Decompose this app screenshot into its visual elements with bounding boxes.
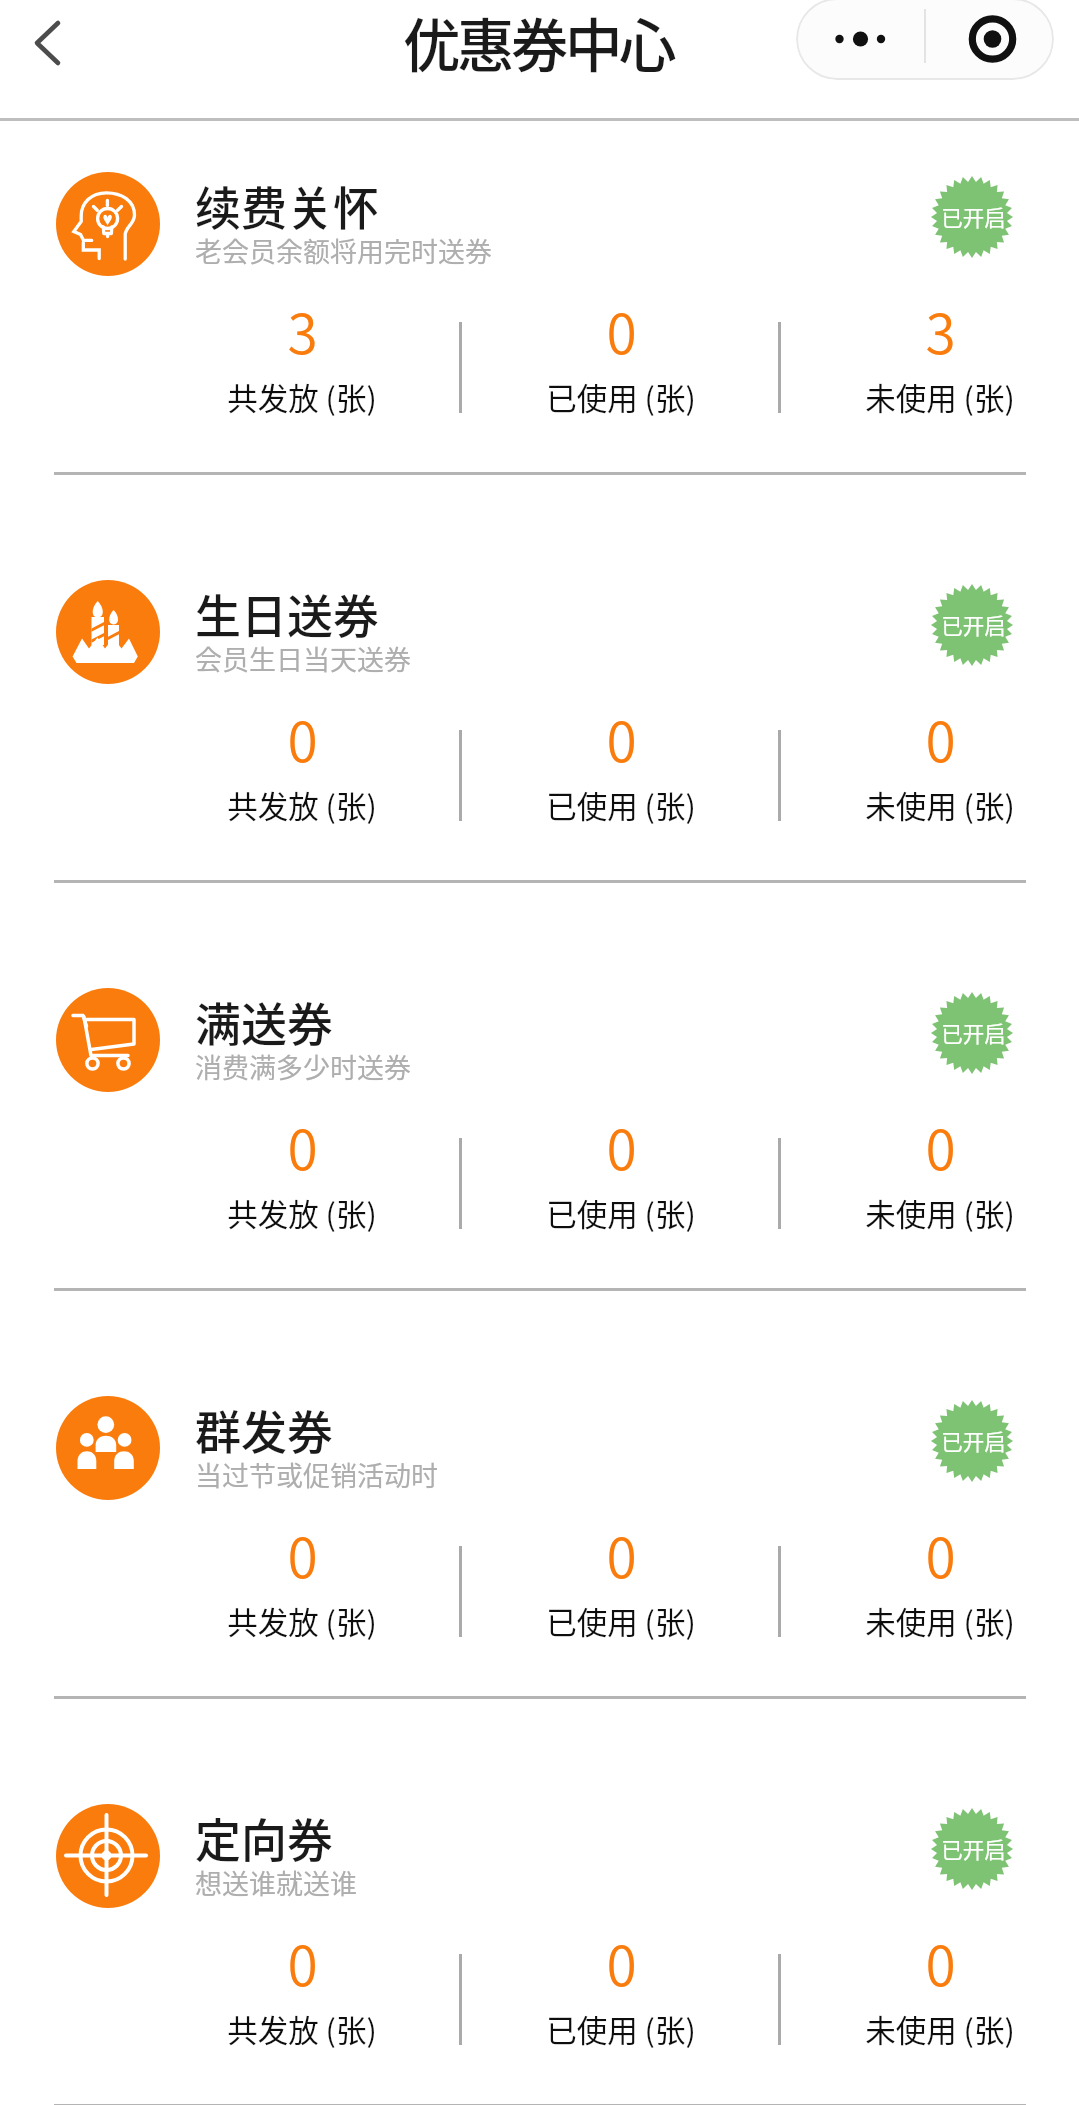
button[interactable] bbox=[0, 881, 1079, 1289]
staticText: 0 bbox=[287, 698, 318, 778]
staticText: 0 bbox=[606, 290, 637, 370]
staticText: 群发券 bbox=[195, 1396, 333, 1463]
staticText: 优惠券中心 bbox=[403, 0, 673, 83]
button[interactable] bbox=[0, 1697, 1079, 2105]
staticText: 已开启 bbox=[941, 201, 1006, 232]
staticText: 0 bbox=[287, 1106, 318, 1186]
staticText: 未使用 (张) bbox=[865, 783, 1015, 827]
staticText: 定向券 bbox=[195, 1804, 333, 1871]
staticText: 共发放 (张) bbox=[227, 1191, 377, 1235]
staticText: 0 bbox=[287, 1922, 318, 2002]
staticText: 已开启 bbox=[941, 1833, 1006, 1864]
staticText: 共发放 (张) bbox=[227, 2007, 377, 2051]
button[interactable] bbox=[0, 1289, 1079, 1697]
staticText: 已开启 bbox=[941, 1017, 1006, 1048]
staticText: 0 bbox=[606, 1922, 637, 2002]
button[interactable]: Back bbox=[0, 0, 96, 88]
staticText: 共发放 (张) bbox=[227, 783, 377, 827]
staticText: 0 bbox=[287, 1514, 318, 1594]
staticText: 已使用 (张) bbox=[546, 375, 696, 419]
staticText: 已使用 (张) bbox=[546, 783, 696, 827]
button[interactable]: More and close bbox=[796, 0, 1054, 80]
staticText: 共发放 (张) bbox=[227, 1599, 377, 1643]
staticText: 0 bbox=[925, 698, 956, 778]
button[interactable]: 已开启 满送券 bbox=[931, 992, 1013, 1074]
staticText: 0 bbox=[606, 698, 637, 778]
staticText: 0 bbox=[606, 1514, 637, 1594]
button[interactable]: 已开启 定向券 bbox=[931, 1808, 1013, 1890]
staticText: 已使用 (张) bbox=[546, 1599, 696, 1643]
staticText: 消费满多少时送券 bbox=[195, 1047, 411, 1086]
staticText: 满送券 bbox=[195, 988, 333, 1055]
staticText: 老会员余额将用完时送券 bbox=[195, 231, 492, 270]
button[interactable]: 已开启 生日送券 bbox=[931, 584, 1013, 666]
staticText: 已使用 (张) bbox=[546, 1191, 696, 1235]
staticText: 0 bbox=[925, 1514, 956, 1594]
staticText: 未使用 (张) bbox=[865, 1599, 1015, 1643]
staticText: 0 bbox=[606, 1106, 637, 1186]
staticText: 3 bbox=[925, 290, 956, 370]
button[interactable] bbox=[0, 473, 1079, 881]
staticText: 已开启 bbox=[941, 1425, 1006, 1456]
staticText: 生日送券 bbox=[195, 580, 379, 647]
staticText: 3 bbox=[287, 290, 318, 370]
staticText: 未使用 (张) bbox=[865, 375, 1015, 419]
button[interactable] bbox=[0, 65, 1079, 473]
staticText: 续费关怀 bbox=[195, 172, 379, 239]
staticText: 0 bbox=[925, 1106, 956, 1186]
staticText: 会员生日当天送券 bbox=[195, 639, 411, 678]
button[interactable]: 已开启 群发券 bbox=[931, 1400, 1013, 1482]
staticText: 0 bbox=[925, 1922, 956, 2002]
staticText: 想送谁就送谁 bbox=[195, 1863, 357, 1902]
button[interactable]: 已开启 续费关怀 bbox=[931, 176, 1013, 258]
staticText: 未使用 (张) bbox=[865, 1191, 1015, 1235]
staticText: 已使用 (张) bbox=[546, 2007, 696, 2051]
staticText: 未使用 (张) bbox=[865, 2007, 1015, 2051]
staticText: 当过节或促销活动时 bbox=[195, 1455, 438, 1494]
staticText: 已开启 bbox=[941, 609, 1006, 640]
staticText: 共发放 (张) bbox=[227, 375, 377, 419]
